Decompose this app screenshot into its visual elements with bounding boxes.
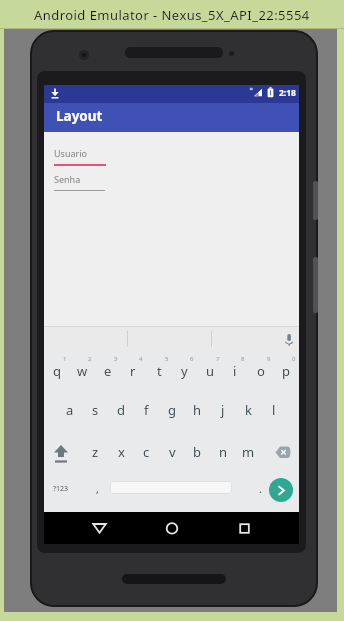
button[interactable]: e <box>96 361 120 381</box>
staticText: t <box>157 362 162 380</box>
staticText: a <box>66 401 74 419</box>
button[interactable]: Usuario <box>54 146 114 160</box>
staticText: . <box>259 481 262 496</box>
button[interactable]: z <box>83 442 107 462</box>
button[interactable]: s <box>83 400 107 420</box>
button[interactable]: v <box>160 442 184 462</box>
staticText: j <box>221 401 225 419</box>
button[interactable]: a <box>58 400 82 420</box>
button[interactable]: x <box>109 442 133 462</box>
button[interactable]: n <box>211 442 235 462</box>
button[interactable] <box>48 440 74 465</box>
staticText: h <box>193 401 202 419</box>
staticText: 0 <box>292 355 296 363</box>
staticText: Android Emulator - Nexus_5X_API_22:5554 <box>34 6 310 24</box>
staticText: d <box>117 401 125 419</box>
staticText: i <box>233 362 237 380</box>
staticText: 1 <box>63 355 67 363</box>
button[interactable]: d <box>109 400 133 420</box>
button[interactable]: o <box>249 361 273 381</box>
button[interactable]: ?123 <box>48 481 74 497</box>
staticText: y <box>181 362 188 380</box>
button[interactable] <box>110 481 232 494</box>
button[interactable]: q <box>45 361 69 381</box>
button[interactable]: t <box>147 361 171 381</box>
staticText: 8 <box>241 355 245 363</box>
staticText: o <box>257 362 265 380</box>
staticText: 6 <box>190 355 194 363</box>
button[interactable]: h <box>185 400 209 420</box>
button[interactable]: u <box>198 361 222 381</box>
button[interactable]: i <box>223 361 247 381</box>
staticText: r <box>130 362 136 380</box>
button[interactable]: b <box>185 442 209 462</box>
button[interactable]: j <box>211 400 235 420</box>
staticText: 2 <box>88 355 92 363</box>
staticText: m <box>242 443 255 461</box>
button[interactable]: r <box>121 361 145 381</box>
staticText: 5 <box>165 355 169 363</box>
staticText: 9 <box>267 355 271 363</box>
staticText: v <box>169 443 176 461</box>
button[interactable]: g <box>160 400 184 420</box>
staticText: u <box>206 362 215 380</box>
button[interactable]: f <box>134 400 158 420</box>
staticText: q <box>53 362 61 380</box>
staticText: g <box>168 401 176 419</box>
staticText: s <box>92 401 99 419</box>
button[interactable]: , <box>85 478 109 498</box>
button[interactable] <box>230 515 258 542</box>
staticText: w <box>77 362 88 380</box>
button[interactable]: p <box>274 361 298 381</box>
staticText: x <box>118 443 125 461</box>
button[interactable]: w <box>70 361 94 381</box>
button[interactable]: l <box>262 400 286 420</box>
button[interactable] <box>270 440 296 465</box>
button[interactable] <box>269 478 293 502</box>
button[interactable] <box>277 328 299 350</box>
staticText: Layout <box>56 107 103 125</box>
staticText: p <box>282 362 290 380</box>
staticText: 4 <box>139 355 143 363</box>
staticText: z <box>92 443 99 461</box>
button[interactable]: Senha <box>54 172 114 186</box>
staticText: e <box>104 362 112 380</box>
button[interactable] <box>158 515 186 542</box>
button[interactable]: y <box>172 361 196 381</box>
button[interactable]: m <box>236 442 260 462</box>
staticText: Senha <box>54 173 81 185</box>
staticText: 3 <box>114 355 118 363</box>
staticText: k <box>245 401 252 419</box>
staticText: ?123 <box>53 484 69 494</box>
staticText: 7 <box>216 355 220 363</box>
staticText: l <box>272 401 276 419</box>
button[interactable]: c <box>134 442 158 462</box>
staticText: 2:18 <box>279 87 296 99</box>
button[interactable]: . <box>248 478 272 498</box>
staticText: f <box>144 401 149 419</box>
button[interactable]: k <box>236 400 260 420</box>
button[interactable] <box>86 515 114 542</box>
staticText: , <box>96 481 99 496</box>
staticText: b <box>193 443 201 461</box>
staticText: c <box>143 443 150 461</box>
staticText: Usuario <box>54 147 87 159</box>
staticText: n <box>219 443 228 461</box>
